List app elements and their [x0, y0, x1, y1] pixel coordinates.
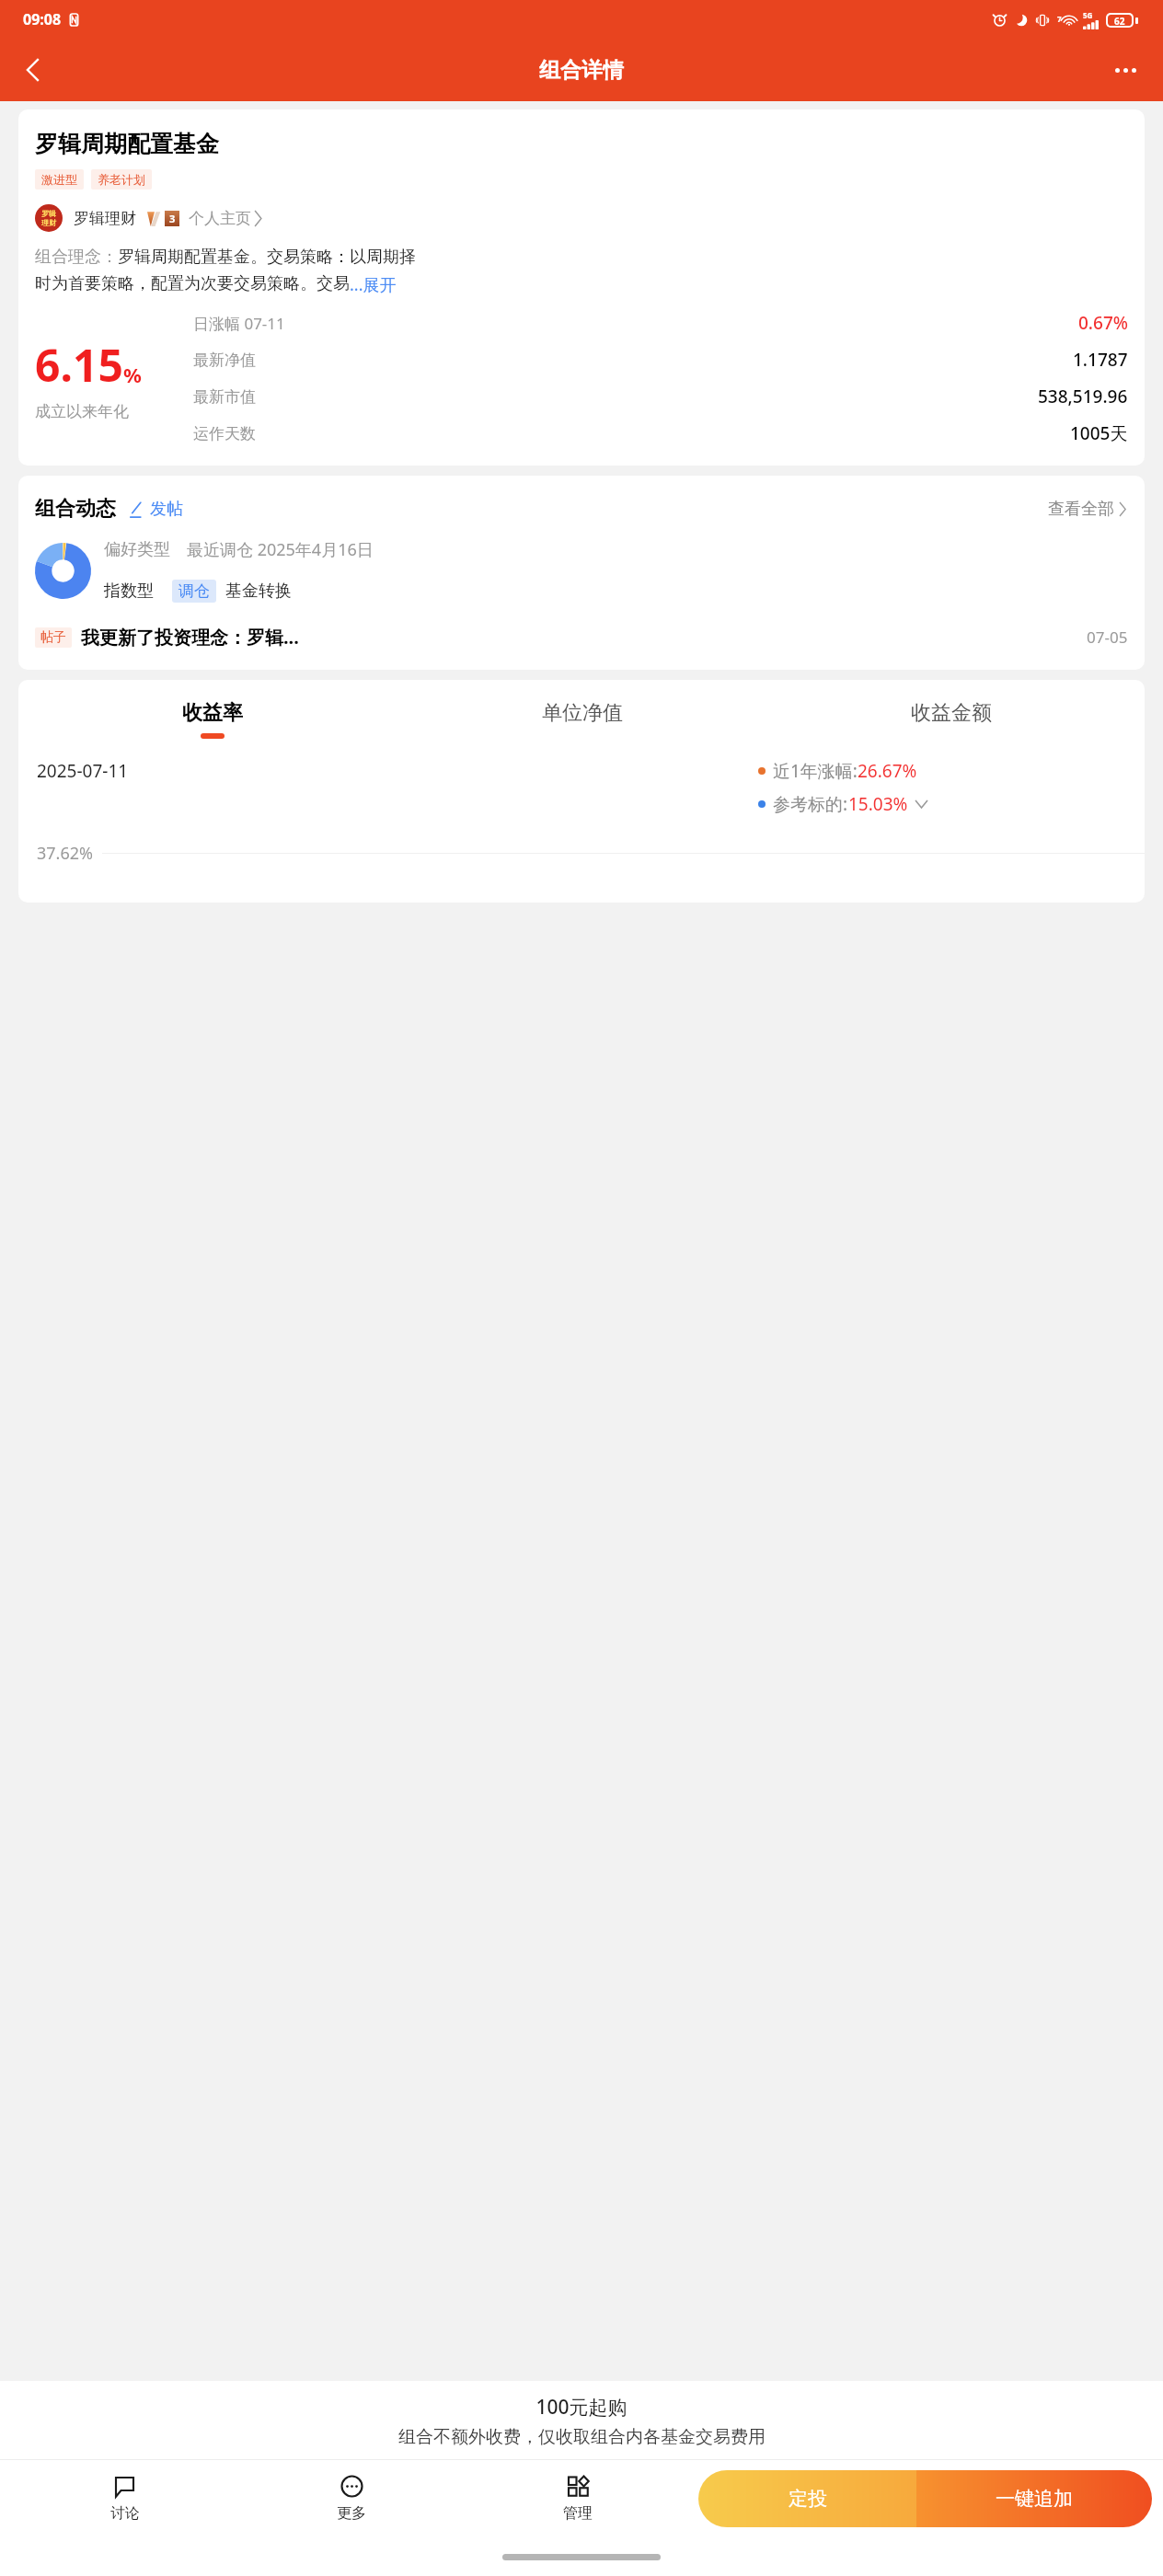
staticText: 09:08 [23, 9, 62, 29]
button[interactable]: 单位净值 [397, 700, 766, 739]
staticText: 近1年涨幅: [773, 759, 858, 783]
staticText: 1005天 [1070, 421, 1128, 445]
button[interactable]: 一键追加 [916, 2470, 1152, 2527]
staticText: 日涨幅 07-11 [193, 313, 285, 334]
staticText: 理财 [41, 218, 56, 227]
staticText: 调仓 [178, 581, 210, 601]
staticText: 讨论 [110, 2504, 140, 2523]
button[interactable]: 发帖 [127, 499, 183, 520]
staticText: 罗辑 [41, 209, 56, 218]
staticText: 组合动态 [35, 496, 116, 522]
staticText: 组合详情 [539, 57, 624, 84]
staticText: 指数型 [104, 581, 154, 602]
staticText: 成立以来年化 [35, 402, 129, 421]
button[interactable]: 定投 [698, 2470, 916, 2527]
staticText: 管理 [563, 2504, 593, 2523]
button[interactable]: 罗辑 [35, 204, 264, 232]
staticText: 更多 [337, 2504, 366, 2523]
staticText: 37.62% [37, 842, 93, 865]
staticText: 组合理念： [35, 247, 118, 268]
staticText: % [123, 361, 142, 388]
button[interactable]: Back [9, 45, 59, 95]
staticText: 偏好类型 [104, 539, 170, 560]
staticText: 62 [1114, 15, 1125, 26]
staticText: 3 [169, 212, 176, 225]
staticText: 最近调仓 2025年4月16日 [187, 538, 374, 561]
staticText: 参考标的: [773, 792, 848, 816]
staticText: 单位净值 [542, 700, 623, 726]
button[interactable]: 更多 [238, 2460, 465, 2537]
staticText: 6.15 [35, 335, 123, 395]
staticText: 时为首要策略，配置为次要交易策略。交易 [35, 273, 350, 294]
staticText: 我更新了投资理念：罗辑... [81, 625, 299, 650]
staticText: 个人主页 [189, 209, 251, 228]
staticText: 罗辑周期配置基金 [35, 130, 219, 158]
staticText: 查看全部 [1048, 499, 1114, 520]
staticText: 罗辑周期配置基金。交易策略：以周期择 [118, 247, 416, 268]
staticText: 组合不额外收费，仅收取组合内各基金交易费用 [398, 2426, 766, 2448]
staticText: 最新净值 [193, 351, 256, 370]
button[interactable]: 帖子 [35, 625, 1128, 650]
staticText: 07-05 [1087, 627, 1128, 648]
staticText: 发帖 [150, 499, 183, 520]
staticText: 定投 [789, 2487, 827, 2511]
staticText: 100元起购 [535, 2394, 628, 2421]
button[interactable]: 收益金额 [766, 700, 1135, 739]
staticText: 0.67% [1078, 311, 1128, 335]
staticText: 一键追加 [996, 2487, 1073, 2511]
staticText: 5G [1083, 10, 1093, 20]
button[interactable]: 收益率 [28, 700, 397, 739]
staticText: 激进型 [41, 172, 77, 187]
staticText: 帖子 [40, 629, 66, 646]
staticText: ...展开 [350, 273, 397, 296]
staticText: 538,519.96 [1038, 385, 1128, 408]
button[interactable]: 查看全部 [1048, 499, 1128, 520]
staticText: 养老计划 [98, 172, 145, 187]
staticText: 1.1787 [1073, 348, 1128, 372]
button[interactable]: 组合理念： [35, 247, 416, 296]
staticText: 基金转换 [225, 581, 292, 602]
staticText: 7 [1057, 14, 1062, 24]
button[interactable]: More options [1100, 45, 1150, 95]
staticText: 15.03% [848, 792, 908, 816]
button[interactable]: 管理 [465, 2460, 691, 2537]
staticText: 收益金额 [911, 700, 992, 726]
staticText: 收益率 [182, 700, 243, 726]
staticText: 最新市值 [193, 387, 256, 407]
staticText: 罗辑理财 [74, 209, 136, 228]
staticText: 26.67% [858, 759, 917, 783]
staticText: 2025-07-11 [37, 759, 129, 783]
button[interactable]: 讨论 [11, 2460, 238, 2537]
staticText: 运作天数 [193, 424, 256, 443]
